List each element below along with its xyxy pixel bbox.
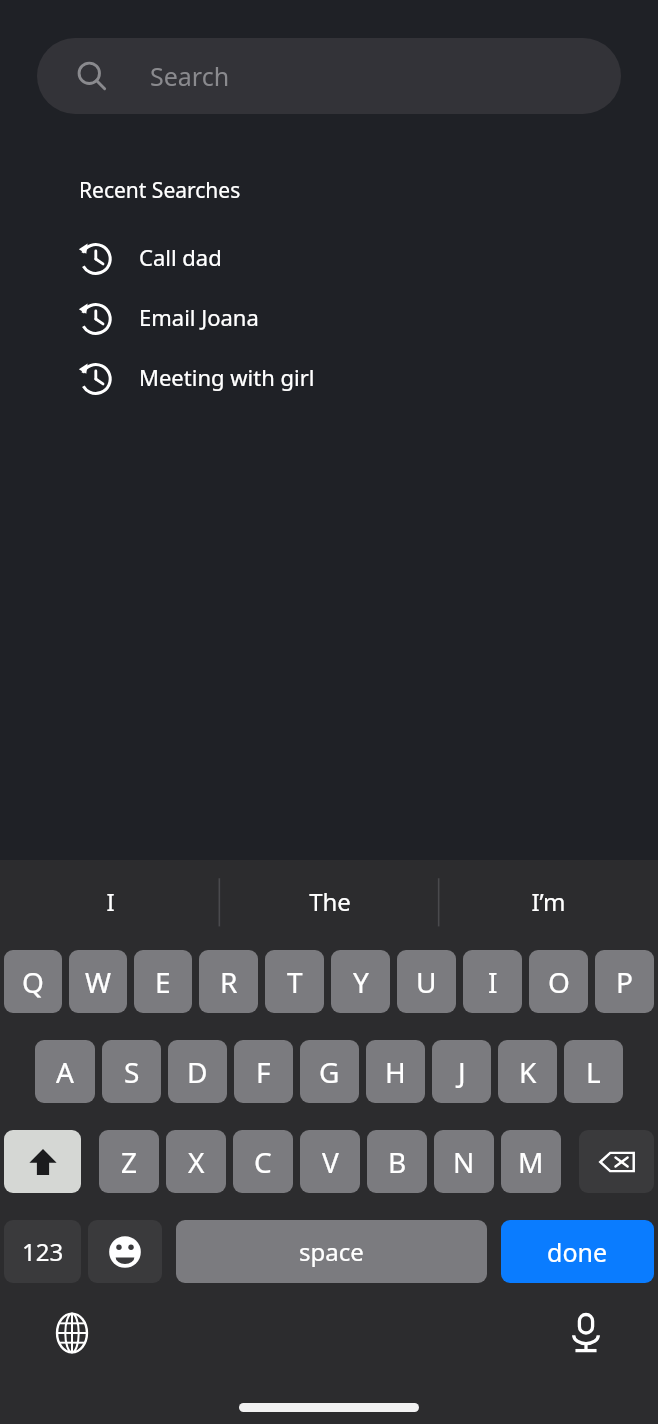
staticText: 123 bbox=[22, 1235, 64, 1268]
staticText: B bbox=[388, 1143, 407, 1181]
staticText: I bbox=[488, 963, 498, 1001]
staticText: Search bbox=[150, 59, 230, 93]
staticText: Z bbox=[121, 1143, 138, 1181]
staticText: done bbox=[547, 1235, 608, 1269]
staticText: Q bbox=[22, 963, 44, 1001]
staticText: U bbox=[416, 963, 437, 1001]
button[interactable]: B bbox=[367, 1130, 427, 1193]
button[interactable]: Call dad bbox=[0, 227, 658, 287]
staticText: X bbox=[188, 1143, 205, 1181]
button[interactable]: Q bbox=[4, 950, 62, 1013]
button[interactable]: I bbox=[463, 950, 522, 1013]
staticText: W bbox=[85, 963, 112, 1001]
staticText: M bbox=[518, 1143, 544, 1181]
button[interactable]: Search bbox=[37, 38, 621, 114]
button[interactable]: Backspace bbox=[579, 1130, 654, 1193]
button[interactable]: V bbox=[300, 1130, 360, 1193]
staticText: L bbox=[586, 1053, 601, 1091]
button[interactable]: F bbox=[234, 1040, 293, 1103]
staticText: I bbox=[106, 885, 115, 918]
button[interactable]: 123 bbox=[4, 1220, 81, 1283]
button[interactable]: M bbox=[501, 1130, 561, 1193]
button[interactable]: S bbox=[102, 1040, 161, 1103]
button[interactable]: L bbox=[564, 1040, 623, 1103]
staticText: E bbox=[155, 963, 171, 1001]
staticText: N bbox=[453, 1143, 475, 1181]
button[interactable]: W bbox=[69, 950, 127, 1013]
staticText: O bbox=[548, 963, 570, 1001]
staticText: V bbox=[322, 1143, 339, 1181]
button[interactable]: Z bbox=[99, 1130, 159, 1193]
button[interactable]: A bbox=[35, 1040, 95, 1103]
staticText: R bbox=[220, 963, 238, 1001]
button[interactable]: I’m bbox=[439, 860, 658, 943]
button[interactable]: Shift bbox=[4, 1130, 81, 1193]
button[interactable]: Voice input bbox=[556, 1303, 616, 1363]
button[interactable]: G bbox=[300, 1040, 359, 1103]
button[interactable]: Change keyboard language bbox=[42, 1303, 102, 1363]
button[interactable]: Emoji bbox=[88, 1220, 162, 1283]
button[interactable]: Meeting with girl bbox=[0, 347, 658, 407]
staticText: A bbox=[56, 1053, 74, 1091]
button[interactable]: T bbox=[265, 950, 324, 1013]
button[interactable]: P bbox=[595, 950, 654, 1013]
staticText: Email Joana bbox=[139, 302, 259, 332]
button[interactable]: N bbox=[434, 1130, 494, 1193]
staticText: Call dad bbox=[139, 242, 222, 272]
button[interactable]: K bbox=[498, 1040, 557, 1103]
button[interactable]: The bbox=[220, 860, 439, 943]
button[interactable]: O bbox=[529, 950, 588, 1013]
staticText: Recent Searches bbox=[79, 176, 241, 205]
staticText: I’m bbox=[531, 885, 566, 918]
button[interactable]: H bbox=[366, 1040, 425, 1103]
staticText: space bbox=[299, 1235, 364, 1268]
button[interactable]: R bbox=[199, 950, 258, 1013]
staticText: K bbox=[519, 1053, 537, 1091]
staticText: F bbox=[256, 1053, 271, 1091]
button[interactable]: Email Joana bbox=[0, 287, 658, 347]
button[interactable]: Y bbox=[331, 950, 390, 1013]
button[interactable]: I bbox=[0, 860, 220, 943]
staticText: The bbox=[309, 885, 351, 918]
button[interactable]: space bbox=[176, 1220, 487, 1283]
button[interactable]: done bbox=[501, 1220, 654, 1283]
staticText: G bbox=[319, 1053, 340, 1091]
staticText: Meeting with girl bbox=[139, 362, 315, 392]
staticText: D bbox=[187, 1053, 208, 1091]
button[interactable]: E bbox=[134, 950, 192, 1013]
button[interactable]: J bbox=[432, 1040, 491, 1103]
staticText: Y bbox=[353, 963, 369, 1001]
staticText: J bbox=[458, 1053, 466, 1091]
button[interactable]: C bbox=[233, 1130, 293, 1193]
staticText: S bbox=[124, 1053, 140, 1091]
staticText: H bbox=[385, 1053, 406, 1091]
staticText: T bbox=[287, 963, 303, 1001]
button[interactable]: X bbox=[166, 1130, 226, 1193]
staticText: C bbox=[254, 1143, 272, 1181]
button[interactable]: D bbox=[168, 1040, 227, 1103]
staticText: P bbox=[616, 963, 633, 1001]
button[interactable]: U bbox=[397, 950, 456, 1013]
